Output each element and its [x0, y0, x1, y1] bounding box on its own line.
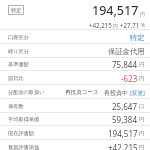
button[interactable]: 保有数: [0, 99, 150, 113]
button[interactable]: 特定: [8, 5, 24, 15]
staticText: 59,384: [112, 114, 138, 125]
button[interactable]: 繰り区分: [0, 44, 150, 58]
button[interactable]: [変更]: [130, 89, 145, 97]
staticText: 平均取得単価: [8, 116, 40, 123]
staticText: 保有数: [8, 103, 24, 110]
staticText: 円: [140, 11, 145, 17]
staticText: %: [141, 22, 145, 29]
staticText: -623: [121, 73, 138, 84]
staticText: 基準価額: [8, 61, 29, 68]
staticText: 円: [113, 23, 118, 29]
staticText: +27.71: [120, 21, 140, 29]
staticText: 口座区分: [8, 34, 29, 41]
staticText: 194,517: [92, 2, 139, 19]
staticText: 繰り区分: [8, 48, 29, 55]
staticText: 前日比: [8, 75, 24, 82]
staticText: 分配金の取扱い: [8, 89, 45, 96]
staticText: 再投資コース: [65, 89, 99, 96]
button[interactable]: 平均取得単価: [0, 112, 150, 126]
staticText: +42,215: [108, 142, 138, 150]
staticText: 再投資中: [104, 89, 128, 97]
staticText: 194,517: [108, 128, 138, 139]
staticText: 最新評価損益: [8, 144, 40, 150]
staticText: 円: [139, 144, 145, 150]
staticText: +42,215: [89, 21, 112, 29]
button[interactable]: 基準価額: [0, 57, 150, 71]
staticText: 特定: [11, 7, 22, 14]
staticText: 円: [139, 116, 145, 123]
button[interactable]: 口座区分: [0, 30, 150, 44]
button[interactable]: 現在評価額: [0, 126, 150, 140]
staticText: 保証金代用: [108, 47, 145, 56]
staticText: 75,844: [112, 59, 138, 70]
staticText: 円: [139, 130, 145, 137]
button[interactable]: 分配金の取扱い: [0, 85, 150, 99]
staticText: 25,647: [112, 101, 138, 112]
staticText: 円: [139, 75, 145, 82]
staticText: 円: [139, 61, 145, 68]
staticText: 現在評価額: [8, 130, 34, 137]
staticText: 口: [139, 103, 145, 110]
staticText: 特定: [130, 33, 145, 42]
button[interactable]: 前日比: [0, 71, 150, 85]
button[interactable]: 最新評価損益: [0, 140, 150, 150]
